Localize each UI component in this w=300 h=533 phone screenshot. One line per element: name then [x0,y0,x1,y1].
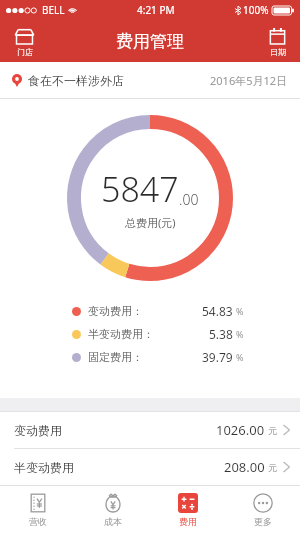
staticText: BELL [42,3,65,17]
staticText: 元 [268,425,277,436]
staticText: 变动费用： [88,304,143,318]
button[interactable]: 成本 [75,486,150,533]
staticText: 54.83 [202,303,233,319]
staticText: 费用 [179,516,197,527]
staticText: 固定费用： [88,350,143,364]
staticText: 总费用(元) [125,215,176,230]
staticText: .00 [179,190,199,209]
button[interactable]: 日期 [263,26,292,59]
staticText: 食在不一样涉外店 [28,73,124,88]
staticText: 5.38 [209,326,233,342]
staticText: % [236,351,244,363]
staticText: % [236,305,244,317]
staticText: 2016年5月12日 [210,73,288,88]
staticText: 100% [243,3,269,17]
button[interactable]: 门店 [8,26,41,59]
button[interactable]: 更多 [225,486,300,533]
staticText: 半变动费用： [88,327,154,341]
staticText: 元 [268,462,277,473]
staticText: 半变动费用 [14,460,74,475]
staticText: 成本 [104,516,122,527]
button[interactable]: 半变动费用： [72,326,244,342]
staticText: 4:21 PM [137,3,175,17]
button[interactable]: 固定费用： [72,349,244,365]
button[interactable]: 半变动费用 [0,449,300,485]
staticText: 更多 [254,516,272,527]
button[interactable]: 费用 [150,486,225,533]
staticText: 门店 [17,47,33,57]
button[interactable]: 变动费用： [72,303,244,319]
staticText: 费用管理 [116,31,184,52]
staticText: 39.79 [202,349,233,365]
staticText: % [236,328,244,340]
button[interactable]: 变动费用 [0,412,300,448]
staticText: 1026.00 [216,421,265,439]
button[interactable]: 营收 [0,486,75,533]
staticText: 208.00 [224,458,265,476]
staticText: 5847 [101,166,179,212]
button[interactable]: 食在不一样涉外店 [0,62,300,98]
staticText: 日期 [270,47,286,57]
staticText: 营收 [29,516,47,527]
staticText: 变动费用 [14,423,62,438]
